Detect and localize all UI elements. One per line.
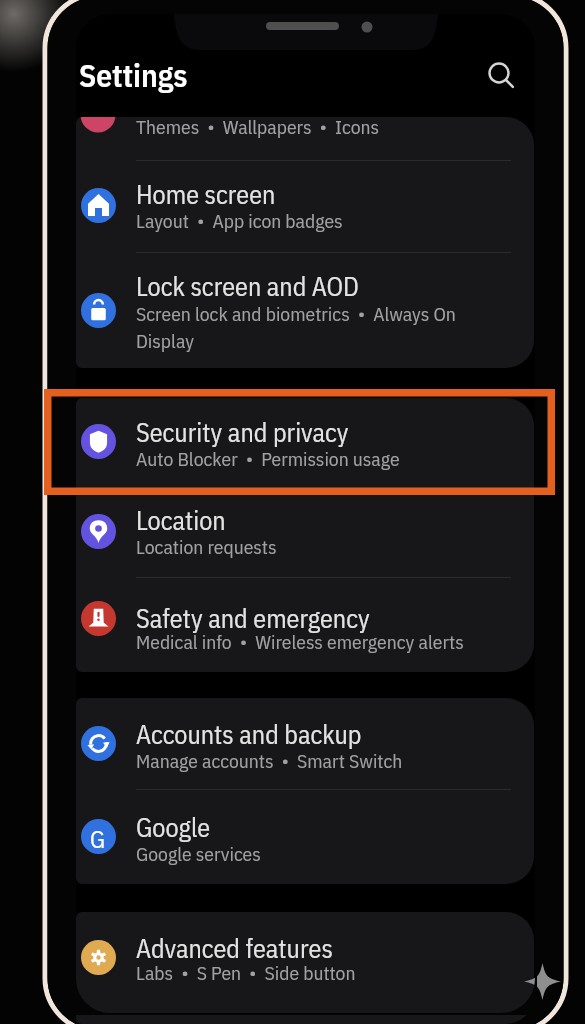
staticText: G bbox=[90, 823, 106, 854]
button[interactable]: Home screen bbox=[76, 161, 534, 252]
staticText: Medical info • Wireless emergency alerts bbox=[136, 629, 464, 654]
button[interactable]: Security and privacy bbox=[76, 398, 534, 489]
button[interactable]: Themes bbox=[76, 117, 534, 160]
staticText: Google bbox=[136, 810, 211, 844]
staticText: Accounts and backup bbox=[136, 717, 362, 751]
button[interactable]: Accounts and backup bbox=[76, 698, 534, 789]
staticText: Labs • S Pen • Side button bbox=[136, 960, 356, 985]
staticText: Location bbox=[136, 503, 226, 537]
staticText: Settings bbox=[79, 55, 188, 96]
staticText: Advanced features bbox=[136, 931, 333, 965]
button[interactable]: Settings bbox=[72, 50, 204, 102]
staticText: Location requests bbox=[136, 534, 277, 559]
staticText: Security and privacy bbox=[136, 415, 349, 449]
staticText: Home screen bbox=[136, 177, 276, 211]
button[interactable]: Safety and emergency bbox=[76, 578, 534, 672]
button[interactable]: Advanced features bbox=[76, 912, 534, 1015]
staticText: Themes • Wallpapers • Icons bbox=[136, 114, 380, 139]
staticText: Screen lock and biometrics • Always On D… bbox=[136, 301, 456, 354]
staticText: Manage accounts • Smart Switch bbox=[136, 748, 403, 773]
button[interactable]: Lock screen and AOD bbox=[76, 253, 534, 368]
button[interactable]: Google bbox=[76, 790, 534, 884]
staticText: Auto Blocker • Permission usage bbox=[136, 446, 400, 471]
staticText: Safety and emergency bbox=[136, 601, 370, 635]
staticText: Layout • App icon badges bbox=[136, 208, 343, 233]
staticText: Google services bbox=[136, 841, 261, 866]
staticText: Lock screen and AOD bbox=[136, 269, 359, 303]
button[interactable]: Location bbox=[76, 490, 534, 577]
button[interactable]: Search bbox=[478, 52, 522, 96]
